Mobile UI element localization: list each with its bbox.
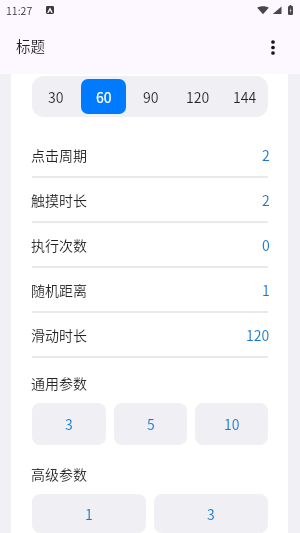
staticText: 标题: [16, 35, 45, 56]
staticText: 通用参数: [31, 373, 87, 393]
staticText: 1: [262, 280, 270, 300]
staticText: 11:27: [6, 3, 33, 18]
button[interactable]: 滑动时长: [11, 313, 288, 358]
staticText: 执行次数: [31, 235, 87, 255]
staticText: 点击周期: [31, 145, 87, 165]
button[interactable]: 触摸时长: [11, 178, 288, 223]
staticText: 0: [262, 235, 270, 255]
staticText: 1: [85, 504, 93, 524]
button[interactable]: 3: [154, 494, 268, 533]
staticText: 3: [207, 504, 215, 524]
staticText: 2: [262, 145, 270, 165]
staticText: 5: [147, 414, 155, 434]
staticText: 10: [224, 414, 240, 434]
staticText: 随机距离: [31, 280, 87, 300]
staticText: 120: [246, 325, 270, 345]
button[interactable]: More options: [250, 20, 296, 74]
staticText: 3: [65, 414, 73, 434]
staticText: 2: [262, 190, 270, 210]
button[interactable]: 120: [175, 79, 220, 114]
staticText: 滑动时长: [31, 325, 87, 345]
staticText: 触摸时长: [31, 190, 87, 210]
staticText: 高级参数: [31, 464, 87, 484]
button[interactable]: 随机距离: [11, 268, 288, 313]
staticText: 120: [186, 87, 210, 107]
button[interactable]: 执行次数: [11, 223, 288, 268]
button[interactable]: 5: [114, 403, 187, 445]
button[interactable]: 30: [33, 79, 79, 114]
button[interactable]: 点击周期: [11, 133, 288, 178]
button[interactable]: 144: [222, 79, 267, 114]
button[interactable]: 60: [81, 79, 126, 114]
staticText: 144: [233, 87, 257, 107]
button[interactable]: 90: [128, 79, 173, 114]
staticText: 90: [143, 87, 159, 107]
button[interactable]: 10: [195, 403, 268, 445]
staticText: 60: [96, 87, 112, 107]
button[interactable]: 1: [32, 494, 146, 533]
staticText: 30: [48, 87, 64, 107]
button[interactable]: 3: [32, 403, 106, 445]
